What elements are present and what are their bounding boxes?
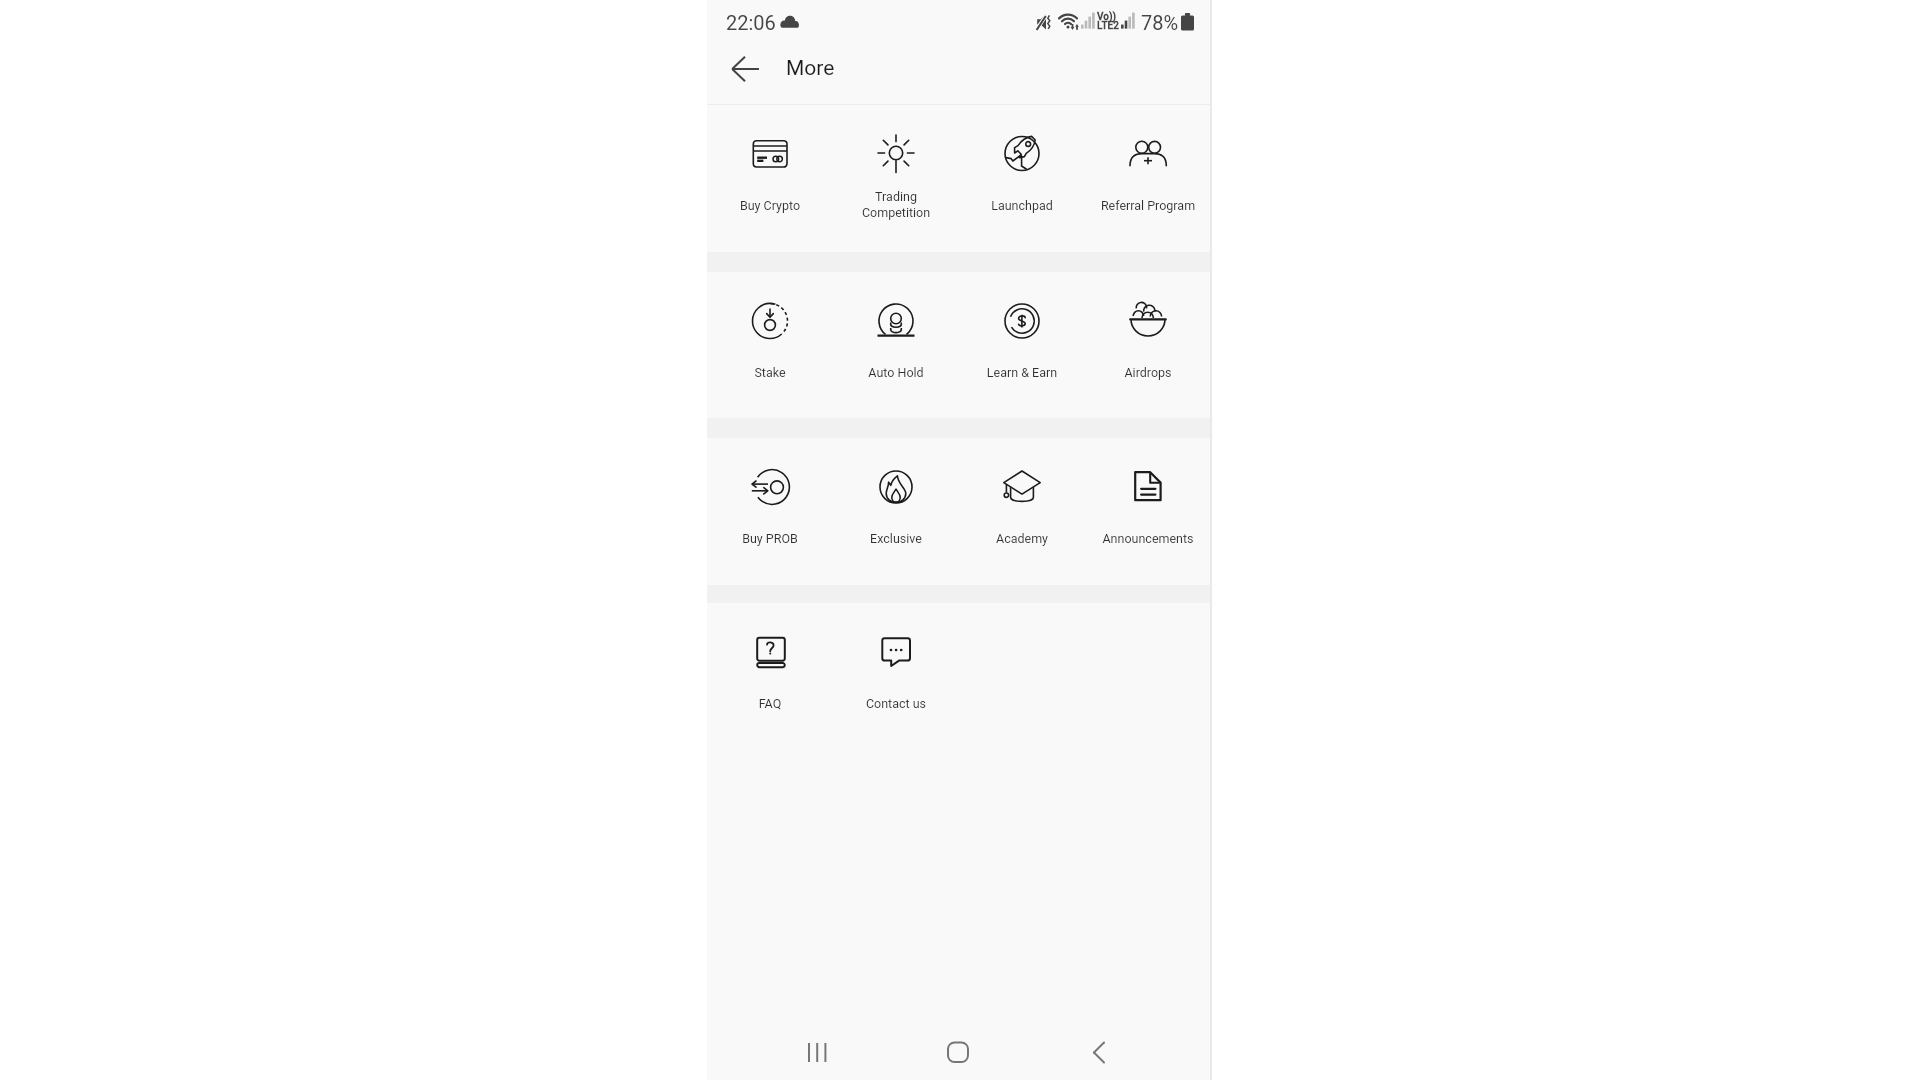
staticText: LTE2 (1097, 20, 1119, 32)
staticText: Announcements (1085, 531, 1211, 546)
button[interactable]: Launchpad (959, 105, 1085, 252)
staticText: Buy Crypto (707, 198, 833, 213)
button[interactable]: FAQ (707, 603, 833, 750)
staticText: Auto Hold (833, 365, 959, 380)
button[interactable]: Announcements (1085, 438, 1211, 585)
staticText: More (786, 56, 835, 81)
button[interactable]: Exclusive (833, 438, 959, 585)
staticText: 78% (1141, 11, 1179, 34)
staticText: Airdrops (1085, 365, 1211, 380)
staticText: Learn & Earn (959, 365, 1085, 380)
staticText: Trading Competition (833, 189, 959, 221)
staticText: FAQ (707, 696, 833, 711)
staticText: Academy (959, 531, 1085, 546)
button[interactable]: Recent apps (780, 1032, 840, 1070)
button[interactable]: Back (711, 47, 755, 91)
staticText: Launchpad (959, 198, 1085, 213)
button[interactable]: Back (1068, 1032, 1128, 1070)
button[interactable]: Buy PROB (707, 438, 833, 585)
staticText: Vo)) (1097, 11, 1117, 23)
button[interactable]: Academy (959, 438, 1085, 585)
staticText: Contact us (833, 696, 959, 711)
staticText: Exclusive (833, 531, 959, 546)
staticText: Referral Program (1085, 198, 1211, 213)
staticText: Stake (707, 365, 833, 380)
button[interactable]: Buy Crypto (707, 105, 833, 252)
staticText: Buy PROB (707, 531, 833, 546)
button[interactable]: Trading Competition (833, 105, 959, 252)
button[interactable]: Learn & Earn (959, 272, 1085, 419)
button[interactable]: Referral Program (1085, 105, 1211, 252)
button[interactable]: Home (928, 1032, 988, 1070)
button[interactable]: Stake (707, 272, 833, 419)
staticText: 22:06 (726, 11, 776, 34)
button[interactable]: Contact us (833, 603, 959, 750)
button[interactable]: Airdrops (1085, 272, 1211, 419)
button[interactable]: Auto Hold (833, 272, 959, 419)
